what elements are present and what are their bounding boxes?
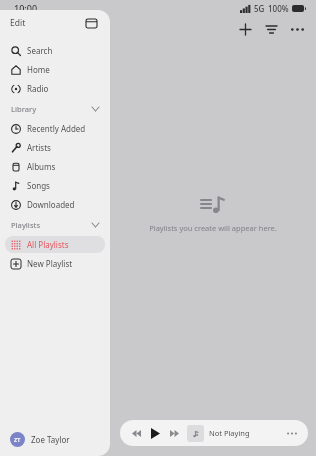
button[interactable]: Sort [258,16,284,42]
staticText: Playlists you create will appear here. [149,223,277,233]
button[interactable]: Previous [128,425,144,441]
staticText: Not Playing [209,428,250,438]
staticText: All Playlists [27,239,69,250]
staticText: Zoe Taylor [31,434,70,445]
button[interactable]: More [282,423,302,443]
button[interactable]: Library [11,98,99,119]
staticText: Library [11,104,37,114]
button[interactable]: Songs [5,177,105,194]
button[interactable]: Radio [5,80,105,97]
staticText: Search [27,45,53,56]
button[interactable]: Downloaded [5,196,105,213]
button[interactable]: Add [232,16,258,42]
button[interactable]: More options [284,16,310,42]
staticText: New Playlist [27,258,73,269]
staticText: 100% [268,3,289,14]
staticText: 10:00 [14,2,38,14]
staticText: Home [27,64,50,75]
staticText: Downloaded [27,199,75,210]
button[interactable]: New Playlist [5,255,105,272]
staticText: ZT [14,436,21,443]
button[interactable]: Next [166,425,182,441]
button[interactable]: Artists [5,139,105,156]
staticText: 5G [254,3,265,14]
button[interactable]: Playlists [11,214,99,235]
staticText: Recently Added [27,123,86,134]
button[interactable]: ZT [10,422,100,456]
button[interactable]: Hide sidebar [82,14,100,32]
staticText: Artists [27,142,51,153]
button[interactable]: Home [5,61,105,78]
button[interactable]: All Playlists [5,236,105,253]
staticText: Edit [10,17,26,29]
button[interactable]: Edit [10,17,26,29]
button[interactable]: Play [146,424,164,442]
staticText: Radio [27,83,49,94]
button[interactable]: Recently Added [5,120,105,137]
staticText: Songs [27,180,50,191]
button[interactable]: Search [5,42,105,59]
staticText: Albums [27,161,56,172]
button[interactable]: Albums [5,158,105,175]
staticText: Playlists [11,220,41,230]
